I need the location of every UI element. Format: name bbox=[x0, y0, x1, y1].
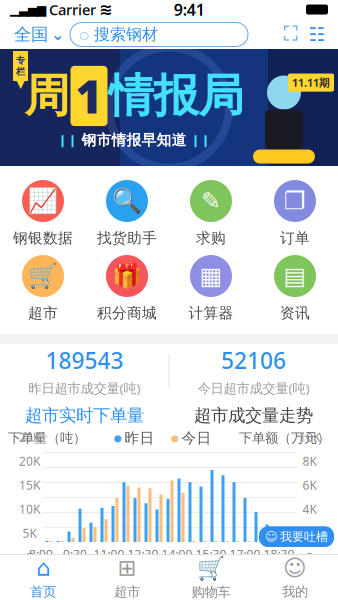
staticText: 首页 bbox=[30, 584, 56, 600]
staticText: 10K bbox=[299, 429, 320, 445]
staticText: ▦ bbox=[199, 262, 222, 290]
staticText: ⊞ bbox=[117, 555, 136, 581]
staticText: 下单额（万元） bbox=[239, 430, 330, 446]
staticText: 全国 bbox=[14, 24, 48, 45]
staticText: 购物车 bbox=[191, 584, 230, 600]
staticText: 17:00 bbox=[229, 546, 260, 562]
staticText: 今日超市成交量(吨) bbox=[197, 379, 309, 397]
button[interactable]: ▦ bbox=[169, 255, 253, 322]
staticText: 52106 bbox=[221, 345, 286, 375]
staticText: ▼ bbox=[16, 78, 24, 90]
button[interactable]: 全国 bbox=[8, 21, 70, 48]
staticText: 🎁 bbox=[112, 262, 142, 290]
staticText: 2K bbox=[302, 525, 316, 541]
staticText: ▁▃▅▆ bbox=[10, 3, 46, 16]
staticText: 昨日超市成交量(吨) bbox=[28, 379, 140, 397]
staticText: 求购 bbox=[196, 229, 226, 247]
staticText: 20K bbox=[19, 453, 40, 469]
button[interactable]: 消息 bbox=[304, 21, 330, 47]
staticText: 15:30 bbox=[195, 546, 226, 562]
staticText: ⌄ bbox=[51, 25, 64, 44]
staticText: 计算器 bbox=[188, 304, 233, 322]
staticText: 189543 bbox=[45, 345, 123, 375]
staticText: 18:30 bbox=[263, 546, 294, 562]
staticText: 14:00 bbox=[161, 546, 192, 562]
staticText: 10K bbox=[19, 501, 40, 517]
staticText: 找货助手 bbox=[97, 229, 157, 247]
staticText: 超市 bbox=[28, 304, 58, 322]
staticText: ❙❙ bbox=[190, 133, 210, 147]
staticText: ◌ bbox=[79, 23, 89, 46]
staticText: 钢银数据 bbox=[13, 229, 73, 247]
staticText: 15K bbox=[19, 477, 40, 493]
staticText: ⛶ bbox=[284, 25, 298, 44]
staticText: 昨日 bbox=[124, 429, 154, 447]
staticText: 12:30 bbox=[127, 546, 158, 562]
staticText: 下单量（吨） bbox=[8, 430, 86, 446]
staticText: 🔍 bbox=[112, 187, 142, 215]
staticText: 订单 bbox=[280, 229, 310, 247]
staticText: 🛒 bbox=[197, 555, 225, 581]
staticText: ≋ bbox=[99, 0, 112, 19]
staticText: ❐ bbox=[284, 187, 306, 215]
staticText: 超市成交量走势 bbox=[194, 405, 313, 426]
staticText: ❙❙ bbox=[57, 133, 77, 147]
button[interactable]: ☺ bbox=[253, 554, 337, 600]
staticText: 9:30 bbox=[63, 546, 87, 562]
staticText: 6K bbox=[302, 477, 316, 493]
staticText: 5K bbox=[22, 525, 36, 541]
staticText: 4K bbox=[302, 501, 316, 517]
button[interactable]: 扫一扫 bbox=[278, 21, 304, 47]
staticText: 情报局 bbox=[108, 68, 243, 124]
button[interactable]: ☺ bbox=[259, 526, 334, 547]
staticText: 8:00 bbox=[29, 546, 53, 562]
staticText: 我要吐槽 bbox=[280, 529, 328, 544]
staticText: 超市实时下单量 bbox=[25, 405, 144, 426]
staticText: 11.11期 bbox=[292, 75, 330, 90]
button[interactable]: ✎ bbox=[169, 180, 253, 247]
staticText: ☺ bbox=[283, 555, 307, 581]
staticText: 9:41 bbox=[174, 0, 205, 20]
staticText: ▤ bbox=[283, 262, 306, 290]
staticText: ● bbox=[170, 433, 178, 443]
staticText: 周 bbox=[24, 68, 69, 124]
button[interactable]: 🛒 bbox=[1, 255, 85, 322]
staticText: 📈 bbox=[28, 187, 58, 215]
staticText: 0 bbox=[26, 549, 33, 565]
button[interactable]: 🛒 bbox=[169, 554, 253, 600]
staticText: 11:00 bbox=[93, 546, 124, 562]
button[interactable]: ⊞ bbox=[85, 554, 169, 600]
staticText: ✎ bbox=[201, 187, 221, 215]
button[interactable]: 超市成交量走势 bbox=[169, 398, 338, 427]
staticText: Carrier bbox=[49, 0, 96, 19]
staticText: 25K bbox=[19, 429, 40, 445]
staticText: 8K bbox=[302, 453, 316, 469]
button[interactable]: ◌ bbox=[70, 22, 248, 46]
button[interactable]: 超市实时下单量 bbox=[0, 398, 169, 427]
button[interactable]: 📈 bbox=[1, 180, 85, 247]
staticText: 钢市情报早知道 bbox=[81, 131, 186, 149]
staticText: 搜索钢材 bbox=[94, 25, 158, 44]
button[interactable]: ▤ bbox=[253, 255, 337, 322]
staticText: 我的 bbox=[282, 584, 308, 600]
staticText: 1 bbox=[75, 66, 102, 126]
staticText: 超市 bbox=[114, 584, 140, 600]
staticText: 栏 bbox=[16, 66, 25, 77]
button[interactable]: ⌂ bbox=[1, 554, 85, 600]
staticText: ⌂ bbox=[36, 555, 50, 581]
button[interactable]: 专 bbox=[0, 49, 338, 166]
staticText: 资讯 bbox=[280, 304, 310, 322]
staticText: ☷ bbox=[308, 24, 325, 45]
button[interactable]: 🎁 bbox=[85, 255, 169, 322]
staticText: 今日 bbox=[181, 429, 211, 447]
staticText: 积分商城 bbox=[97, 304, 157, 322]
staticText: 0 bbox=[306, 549, 313, 565]
staticText: ☺ bbox=[265, 530, 278, 543]
button[interactable]: ❐ bbox=[253, 180, 337, 247]
staticText: 🛒 bbox=[28, 262, 58, 290]
button[interactable]: 🔍 bbox=[85, 180, 169, 247]
staticText: 专 bbox=[16, 54, 25, 66]
staticText: ● bbox=[113, 433, 121, 443]
